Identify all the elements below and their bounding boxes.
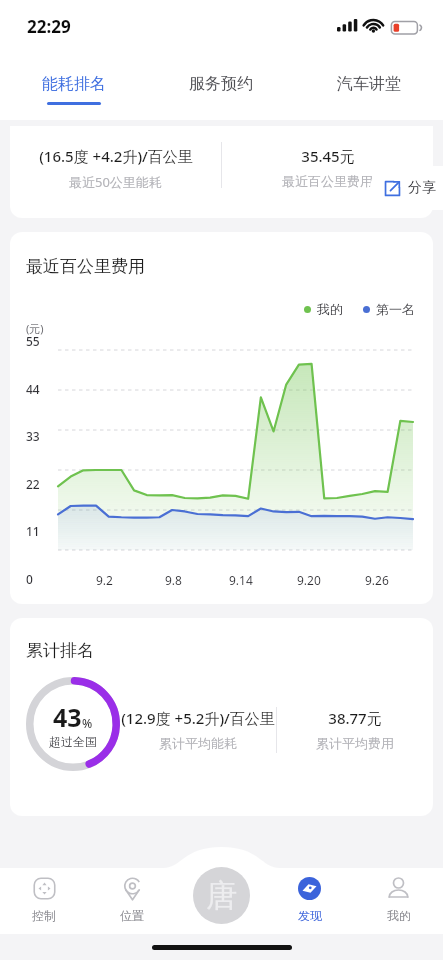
staticText: 44 [26,381,40,397]
button[interactable]: 位置 [88,860,176,934]
staticText: 9.8 [165,572,182,588]
button[interactable]: 能耗排名 [0,58,147,120]
staticText: 控制 [32,908,56,923]
button[interactable]: 服务预约 [147,58,295,120]
staticText: 汽车讲堂 [337,74,401,94]
staticText: 累计平均能耗 [159,735,237,751]
staticText: 最近百公里费用 [282,173,373,189]
staticText: 发现 [298,908,322,923]
staticText: 43 [53,700,82,734]
staticText: 38.77元 [328,708,382,728]
staticText: % [82,715,93,731]
staticText: 22:29 [27,15,71,38]
staticText: 我的 [317,301,343,317]
staticText: (16.5度 +4.2升)/百公里 [39,146,193,166]
staticText: 0 [26,571,33,587]
button[interactable]: 发现 [265,860,354,934]
staticText: 第一名 [376,301,415,317]
button[interactable]: 分享 [370,166,443,210]
staticText: 超过全国 [49,734,97,749]
staticText: 最近百公里费用 [26,256,145,277]
staticText: 11 [26,523,40,539]
staticText: 累计平均费用 [316,735,394,751]
staticText: 我的 [387,908,411,923]
staticText: 9.20 [297,572,321,588]
staticText: 服务预约 [189,74,253,94]
staticText: 9.14 [229,572,253,588]
button[interactable]: 我的 [354,860,443,934]
staticText: 35.45元 [301,146,355,166]
staticText: (元) [26,321,44,336]
staticText: 9.26 [365,572,389,588]
staticText: 33 [26,428,40,444]
staticText: 能耗排名 [42,74,106,94]
staticText: 55 [26,333,40,349]
button[interactable]: (16.5度 +4.2升)/百公里 [10,126,433,218]
button[interactable]: 汽车讲堂 [295,58,443,120]
button[interactable]: 控制 [0,860,88,934]
staticText: 最近50公里能耗 [69,173,162,191]
staticText: 22 [26,476,40,492]
staticText: 位置 [120,908,144,923]
staticText: 分享 [408,179,436,197]
staticText: 唐 [206,876,237,915]
staticText: 累计排名 [26,640,94,661]
staticText: 9.2 [96,572,113,588]
staticText: (12.9度 +5.2升)/百公里 [121,708,275,728]
button[interactable]: 唐 [193,867,250,924]
